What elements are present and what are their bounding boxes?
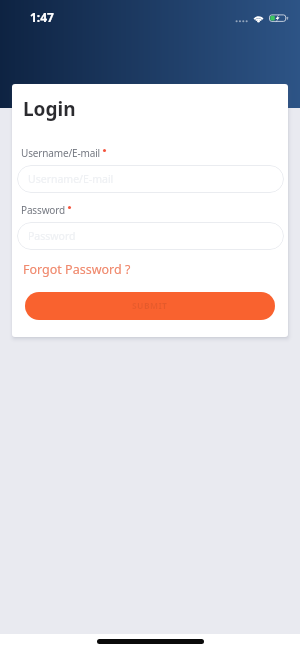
staticText: Password — [28, 229, 76, 243]
button[interactable]: SUBMIT — [25, 292, 275, 320]
button[interactable]: Username/E-mail — [17, 165, 284, 193]
staticText: Password — [21, 203, 66, 217]
staticText: 1:47 — [30, 9, 54, 25]
button[interactable]: Password — [17, 222, 284, 250]
staticText: SUBMIT — [132, 300, 168, 312]
staticText: Login — [23, 96, 76, 122]
staticText: Username/E-mail — [21, 146, 101, 160]
staticText: Username/E-mail — [28, 172, 114, 186]
button[interactable]: Forgot Password ? — [23, 261, 131, 278]
